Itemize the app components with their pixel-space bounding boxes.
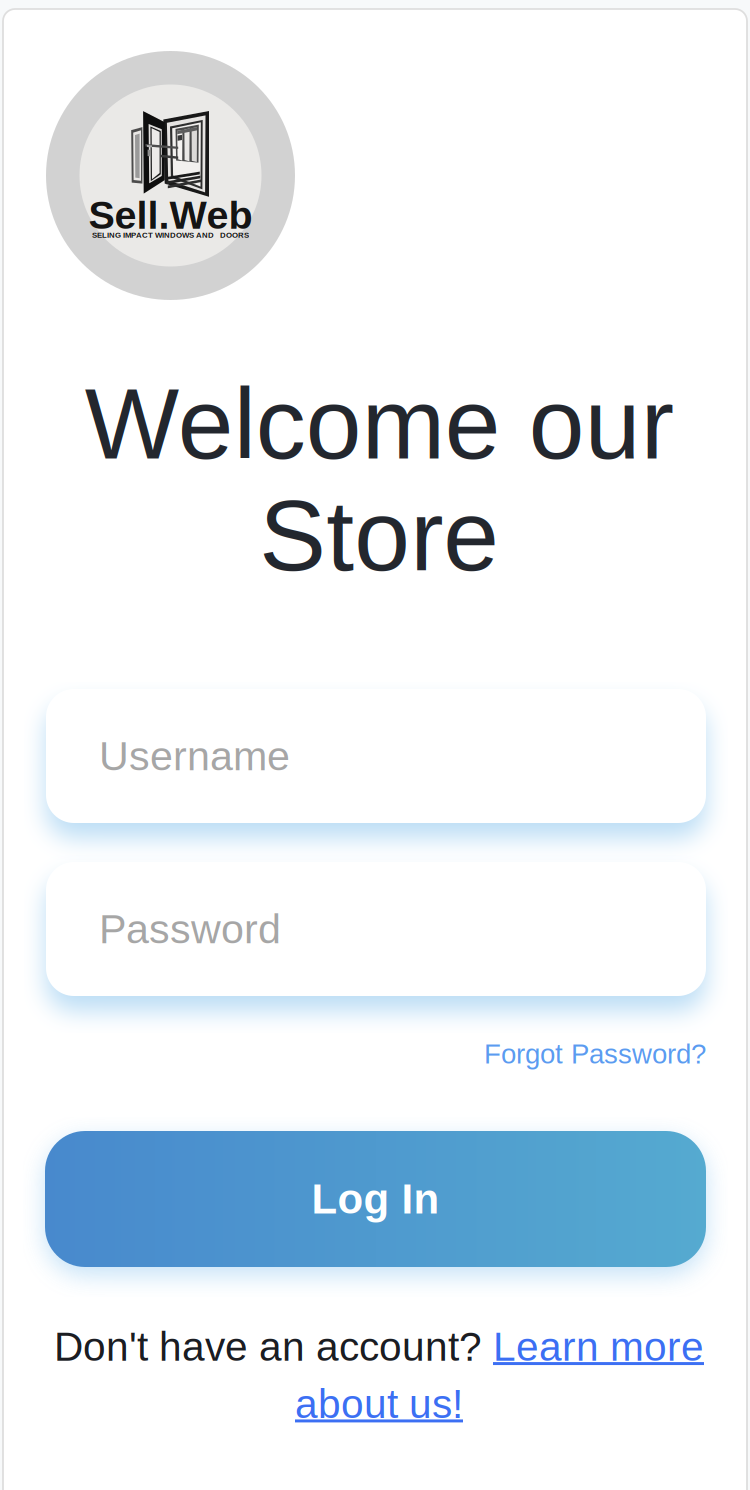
button[interactable]: about us!	[295, 1381, 463, 1427]
staticText: Username	[99, 733, 290, 779]
button[interactable]: Password	[46, 862, 706, 996]
staticText: Forgot Password?	[484, 1039, 706, 1069]
staticText: about us!	[295, 1381, 463, 1427]
button[interactable]: Log In	[45, 1131, 706, 1267]
staticText: Log In	[311, 1175, 439, 1222]
staticText: Password	[99, 906, 281, 952]
staticText: Welcome our Store	[84, 368, 673, 591]
button[interactable]: Username	[46, 689, 706, 823]
button[interactable]: Learn more	[493, 1324, 704, 1369]
staticText: Sell.Web	[88, 193, 252, 237]
button[interactable]: Forgot Password?	[44, 1034, 706, 1074]
staticText: Don't have an account?	[54, 1324, 493, 1369]
staticText: SELING IMPACT WINDOWS AND DOORS	[92, 231, 249, 239]
staticText: Learn more	[493, 1324, 704, 1369]
